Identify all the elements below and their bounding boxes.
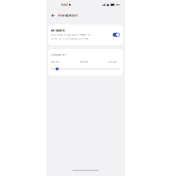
staticText: EXPAND BY <box>51 53 67 56</box>
staticText: 85% <box>116 3 120 6</box>
staticText: When enough storage space is available, … <box>51 34 91 36</box>
staticText: 4096 MB <box>79 61 87 63</box>
staticText: 11:52 <box>61 3 68 6</box>
staticText: can set up to 8 GB expanded extra RAM. <box>51 38 90 40</box>
button[interactable]: RAM expansion <box>48 24 123 45</box>
staticText: RAM expansion <box>58 14 78 17</box>
staticText: 2048 MB <box>51 61 59 63</box>
staticText: RAM expansion <box>51 29 65 32</box>
staticText: 8192 MB <box>108 61 116 63</box>
button[interactable]: RAM expansion <box>46 9 125 21</box>
